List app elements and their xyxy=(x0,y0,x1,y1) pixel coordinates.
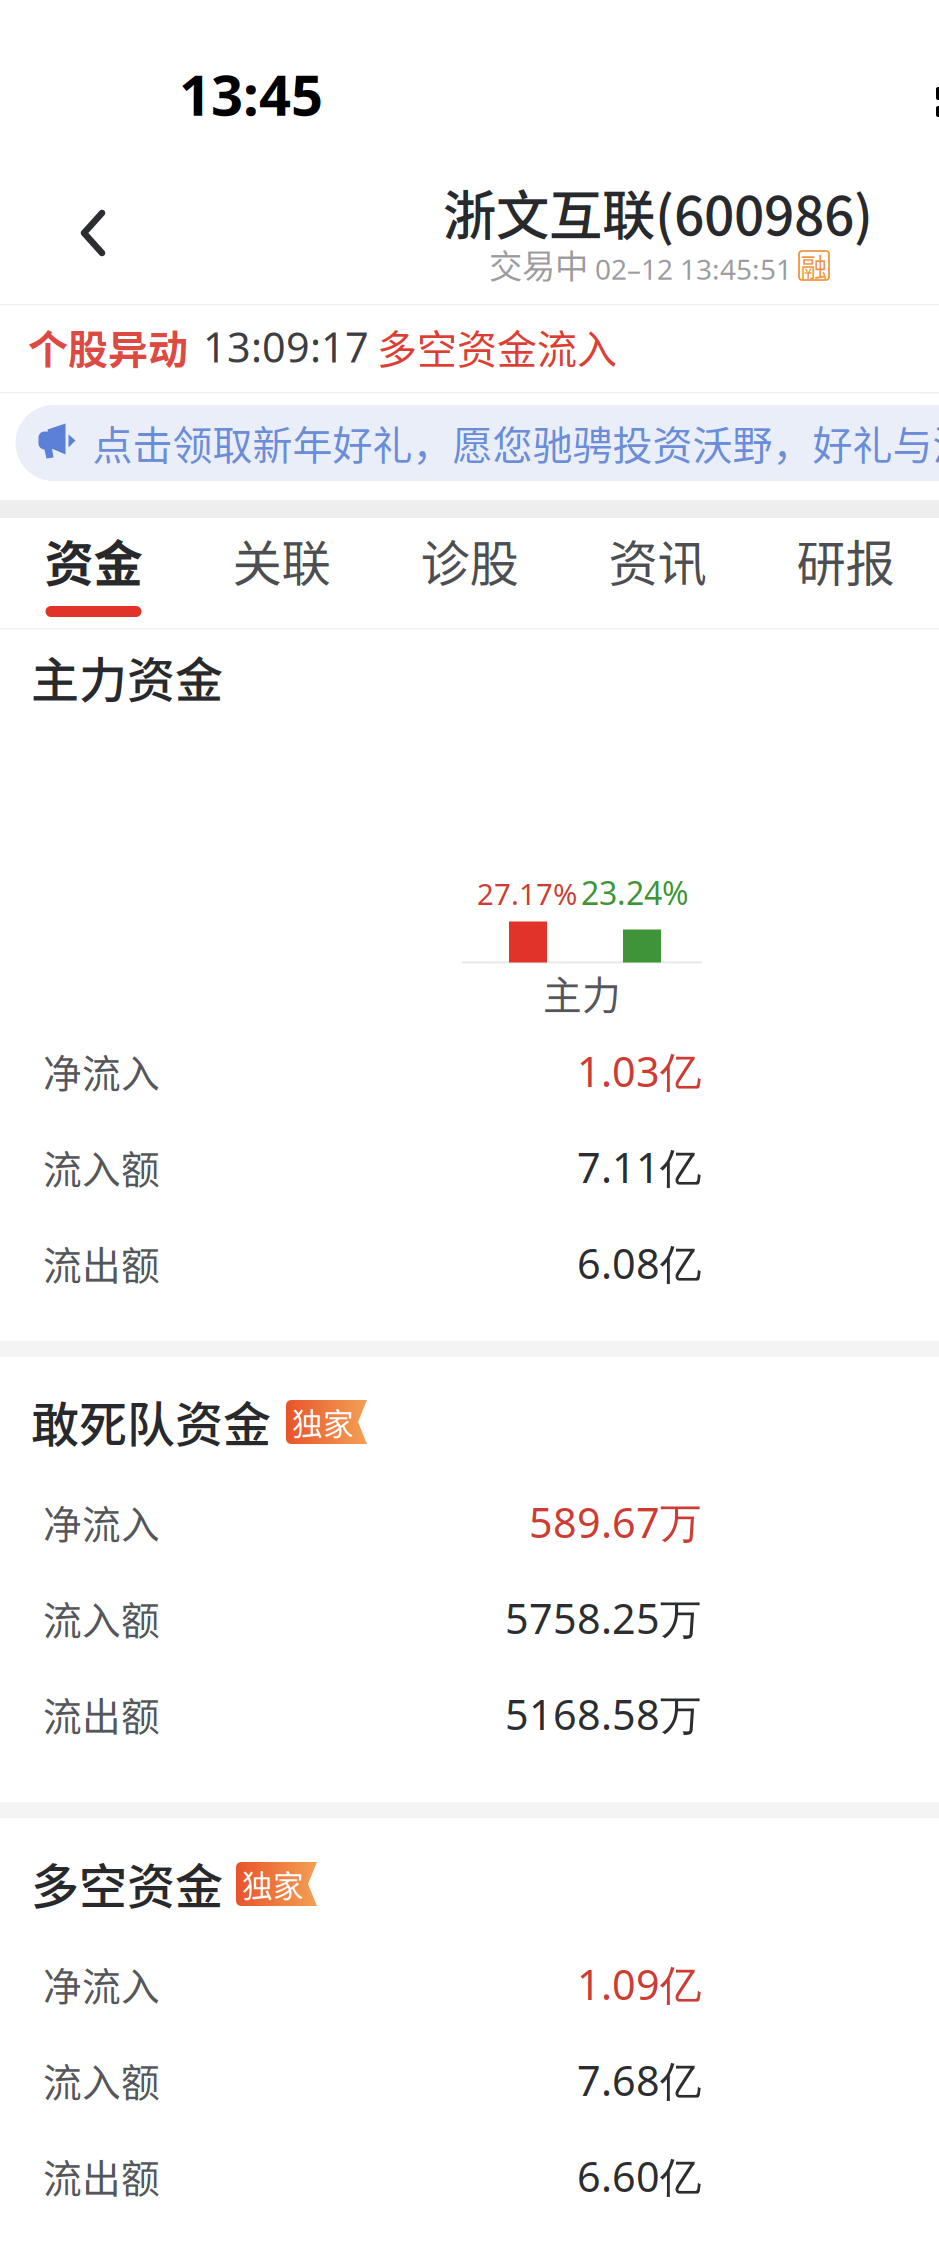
staticText: 净流入 xyxy=(43,1494,160,1550)
staticText: 诊股 xyxy=(420,524,518,596)
button[interactable]: 诊股 xyxy=(375,518,563,628)
staticText: 流入额 xyxy=(43,2052,160,2108)
staticText: 净流入 xyxy=(43,1956,160,2012)
staticText: 1.03亿 xyxy=(577,1043,701,1099)
staticText: 流出额 xyxy=(43,1686,160,1742)
button[interactable]: 资讯 xyxy=(563,518,751,628)
staticText: 主力资金 xyxy=(31,642,223,711)
staticText: 7.11亿 xyxy=(577,1139,701,1195)
staticText: 融 xyxy=(800,246,827,285)
staticText: 流入额 xyxy=(43,1590,160,1646)
button[interactable]: 资金 xyxy=(0,518,187,628)
staticText: 资金 xyxy=(44,524,142,596)
button[interactable]: 研报 xyxy=(751,518,939,628)
staticText: 13:45 xyxy=(179,56,323,132)
button[interactable]: Margin trading xyxy=(799,251,829,280)
staticText: 流入额 xyxy=(43,1139,160,1195)
staticText: 13:09:17 xyxy=(203,318,369,375)
staticText: 589.67万 xyxy=(529,1494,701,1550)
button[interactable]: 点击领取新年好礼，愿您驰骋投资沃野，好礼与汽 xyxy=(0,393,939,500)
staticText: 6.08亿 xyxy=(577,1235,701,1291)
staticText: 流出额 xyxy=(43,2148,160,2204)
staticText: 多空资金 xyxy=(31,1848,223,1918)
staticText: 多空资金流入 xyxy=(377,317,617,375)
staticText: 1.09亿 xyxy=(577,1956,701,2012)
staticText: 5758.25万 xyxy=(505,1590,701,1646)
staticText: 浙文互联(600986) xyxy=(443,173,873,251)
staticText: 个股异动 xyxy=(28,317,188,375)
staticText: 主力 xyxy=(543,964,621,1020)
staticText: 5168.58万 xyxy=(505,1686,701,1742)
staticText: 独家 xyxy=(292,1400,354,1444)
staticText: 研报 xyxy=(796,524,894,596)
button[interactable]: 关联 xyxy=(187,518,375,628)
staticText: 02–12 13:45:51 xyxy=(595,250,792,288)
staticText: 敢死队资金 xyxy=(31,1386,271,1456)
staticText: 净流入 xyxy=(43,1043,160,1099)
button[interactable]: 个股异动 xyxy=(0,305,939,392)
staticText: 资讯 xyxy=(608,524,706,596)
staticText: 流出额 xyxy=(43,1235,160,1291)
staticText: 点击领取新年好礼，愿您驰骋投资沃野，好礼与汽 xyxy=(92,413,939,471)
staticText: 6.60亿 xyxy=(577,2148,701,2204)
staticText: 交易中 xyxy=(489,240,588,288)
staticText: 23.24% xyxy=(581,871,689,914)
staticText: 7.68亿 xyxy=(577,2052,701,2108)
staticText: 27.17% xyxy=(477,873,577,913)
button[interactable]: Back xyxy=(20,175,140,295)
staticText: 独家 xyxy=(242,1862,304,1906)
staticText: 关联 xyxy=(232,524,330,596)
